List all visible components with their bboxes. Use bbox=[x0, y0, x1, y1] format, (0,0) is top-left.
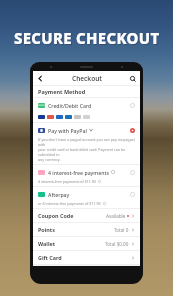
staticText: Pay with PayPal bbox=[48, 127, 87, 134]
staticText: Gift Card bbox=[38, 254, 62, 261]
button[interactable]: Pay with PayPal bbox=[33, 122, 140, 137]
button[interactable]: Afterpay bbox=[33, 186, 140, 201]
button[interactable]: Coupon Code bbox=[33, 208, 140, 222]
button[interactable]: Points bbox=[33, 222, 140, 236]
staticText: Points bbox=[38, 226, 55, 233]
staticText: or 4 interest-free payments of $11.93 bbox=[38, 201, 101, 206]
button[interactable]: 4 interest-free payments bbox=[33, 164, 140, 179]
staticText: SECURE CHECKOUT bbox=[14, 28, 160, 48]
button[interactable]: Gift Card bbox=[33, 250, 140, 264]
staticText: Credit/Debit Card bbox=[48, 102, 92, 109]
button[interactable]: Wallet bbox=[33, 236, 140, 250]
staticText: SECURE CHECKOUT bbox=[15, 29, 161, 49]
staticText: Checkout bbox=[72, 74, 102, 83]
button[interactable]: Support bbox=[125, 71, 140, 86]
staticText: Afterpay bbox=[48, 191, 70, 198]
staticText: Coupon Code bbox=[38, 212, 74, 219]
staticText: Wallet bbox=[38, 240, 56, 247]
button[interactable]: Back bbox=[33, 71, 48, 86]
staticText: 4 interest-free payments of $11.93 bbox=[38, 179, 96, 184]
staticText: If you don't have a paypal account you c… bbox=[38, 137, 135, 162]
staticText: 4 interest-free payments bbox=[48, 169, 109, 176]
staticText: Payment Method bbox=[38, 88, 86, 95]
staticText: Available bbox=[106, 213, 126, 219]
button[interactable]: Credit/Debit Card bbox=[33, 97, 140, 112]
staticText: Total $0.00 bbox=[105, 241, 129, 247]
staticText: Total 0 bbox=[114, 227, 129, 233]
